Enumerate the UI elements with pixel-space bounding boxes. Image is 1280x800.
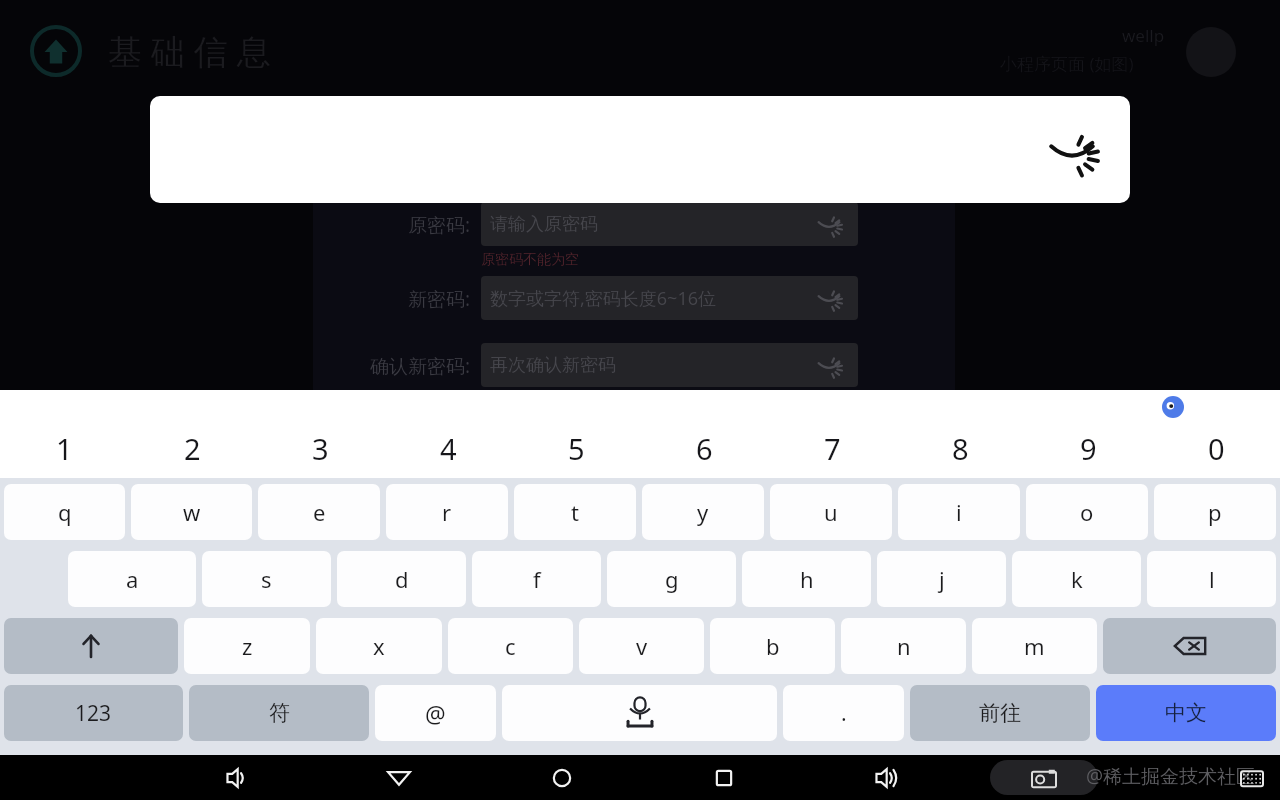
staticText: 前往 bbox=[979, 700, 1021, 726]
button[interactable]: 0 bbox=[1152, 429, 1280, 468]
button[interactable]: v bbox=[579, 618, 704, 674]
button[interactable]: 123 bbox=[4, 685, 183, 741]
button[interactable]: m bbox=[972, 618, 1097, 674]
button[interactable]: 再次确认新密码 bbox=[481, 343, 858, 387]
button[interactable]: g bbox=[607, 551, 736, 607]
staticText: u bbox=[824, 497, 838, 527]
button[interactable]: 3 bbox=[256, 429, 384, 468]
button[interactable]: u bbox=[770, 484, 892, 540]
button[interactable]: 中文 bbox=[1096, 685, 1276, 741]
button[interactable]: t bbox=[514, 484, 636, 540]
staticText: 6 bbox=[696, 429, 713, 468]
staticText: 数字或字符,密码长度6~16位 bbox=[490, 286, 717, 311]
staticText: 4 bbox=[440, 429, 457, 468]
button[interactable]: j bbox=[877, 551, 1006, 607]
staticText: @稀土掘金技术社区 bbox=[1086, 763, 1256, 789]
staticText: n bbox=[897, 631, 911, 661]
button[interactable]: Keyboard bbox=[1240, 767, 1264, 791]
staticText: 中文 bbox=[1165, 700, 1207, 726]
button[interactable]: Show password bbox=[816, 285, 842, 311]
staticText: q bbox=[58, 497, 72, 527]
button[interactable]: 前往 bbox=[910, 685, 1090, 741]
button[interactable]: Show password bbox=[816, 211, 842, 237]
staticText: 9 bbox=[1080, 429, 1097, 468]
button[interactable]: 7 bbox=[768, 429, 896, 468]
staticText: r bbox=[442, 497, 452, 527]
button[interactable]: Home bbox=[545, 761, 579, 795]
staticText: 符 bbox=[269, 700, 290, 726]
staticText: s bbox=[261, 564, 272, 594]
staticText: 1 bbox=[56, 429, 73, 468]
staticText: 基 础 信 息 bbox=[108, 28, 271, 74]
staticText: p bbox=[1208, 497, 1222, 527]
staticText: 7 bbox=[824, 429, 841, 468]
button[interactable]: Space bbox=[502, 685, 777, 741]
button[interactable]: q bbox=[4, 484, 125, 540]
staticText: . bbox=[841, 699, 847, 728]
staticText: 原密码: bbox=[330, 212, 470, 238]
button[interactable]: 4 bbox=[384, 429, 512, 468]
button[interactable]: Back bbox=[382, 761, 416, 795]
button[interactable]: n bbox=[841, 618, 966, 674]
button[interactable]: 请输入原密码 bbox=[481, 202, 858, 246]
button[interactable]: w bbox=[131, 484, 252, 540]
staticText: m bbox=[1024, 631, 1045, 661]
button[interactable]: p bbox=[1154, 484, 1276, 540]
staticText: c bbox=[505, 631, 516, 661]
button[interactable]: Volume up bbox=[869, 761, 903, 795]
button[interactable]: 2 bbox=[128, 429, 256, 468]
button[interactable]: Hide password bbox=[1046, 124, 1098, 176]
button[interactable]: @ bbox=[375, 685, 496, 741]
staticText: v bbox=[636, 631, 648, 661]
staticText: d bbox=[395, 564, 409, 594]
button[interactable]: b bbox=[710, 618, 835, 674]
button[interactable]: l bbox=[1147, 551, 1276, 607]
button[interactable]: r bbox=[386, 484, 508, 540]
button[interactable]: Hide password bbox=[150, 96, 1130, 203]
button[interactable]: 6 bbox=[640, 429, 768, 468]
button[interactable]: x bbox=[316, 618, 442, 674]
button[interactable]: 8 bbox=[896, 429, 1024, 468]
button[interactable]: . bbox=[783, 685, 904, 741]
button[interactable]: Recents bbox=[707, 761, 741, 795]
button[interactable]: z bbox=[184, 618, 310, 674]
button[interactable]: Delete bbox=[1103, 618, 1276, 674]
staticText: l bbox=[1209, 564, 1215, 594]
button[interactable]: f bbox=[472, 551, 601, 607]
button[interactable]: Input method logo bbox=[1162, 396, 1184, 418]
staticText: e bbox=[313, 497, 326, 527]
staticText: 确认新密码: bbox=[330, 353, 470, 379]
button[interactable]: Show password bbox=[816, 352, 842, 378]
button[interactable]: Volume down bbox=[220, 761, 254, 795]
staticText: @ bbox=[425, 698, 446, 729]
staticText: i bbox=[956, 497, 962, 527]
button[interactable]: Shift bbox=[4, 618, 178, 674]
button[interactable]: c bbox=[448, 618, 573, 674]
staticText: x bbox=[373, 631, 385, 661]
button[interactable]: y bbox=[642, 484, 764, 540]
staticText: z bbox=[242, 631, 253, 661]
button[interactable]: 符 bbox=[189, 685, 369, 741]
button[interactable]: s bbox=[202, 551, 331, 607]
staticText: k bbox=[1071, 564, 1083, 594]
staticText: 123 bbox=[75, 699, 112, 728]
staticText: 8 bbox=[952, 429, 969, 468]
button[interactable]: 9 bbox=[1024, 429, 1152, 468]
button[interactable]: i bbox=[898, 484, 1020, 540]
staticText: 请输入原密码 bbox=[490, 213, 598, 236]
button[interactable]: o bbox=[1026, 484, 1148, 540]
staticText: 0 bbox=[1208, 429, 1225, 468]
staticText: 2 bbox=[184, 429, 201, 468]
staticText: 再次确认新密码 bbox=[490, 354, 616, 377]
button[interactable]: e bbox=[258, 484, 380, 540]
button[interactable]: h bbox=[742, 551, 871, 607]
button[interactable]: 数字或字符,密码长度6~16位 bbox=[481, 276, 858, 320]
button[interactable]: 5 bbox=[512, 429, 640, 468]
staticText: 5 bbox=[568, 429, 585, 468]
button[interactable]: k bbox=[1012, 551, 1141, 607]
button[interactable]: d bbox=[337, 551, 466, 607]
staticText: 新密码: bbox=[330, 286, 470, 312]
button[interactable]: 1 bbox=[0, 429, 128, 468]
button[interactable]: a bbox=[68, 551, 196, 607]
button[interactable]: Screenshot bbox=[990, 760, 1098, 795]
